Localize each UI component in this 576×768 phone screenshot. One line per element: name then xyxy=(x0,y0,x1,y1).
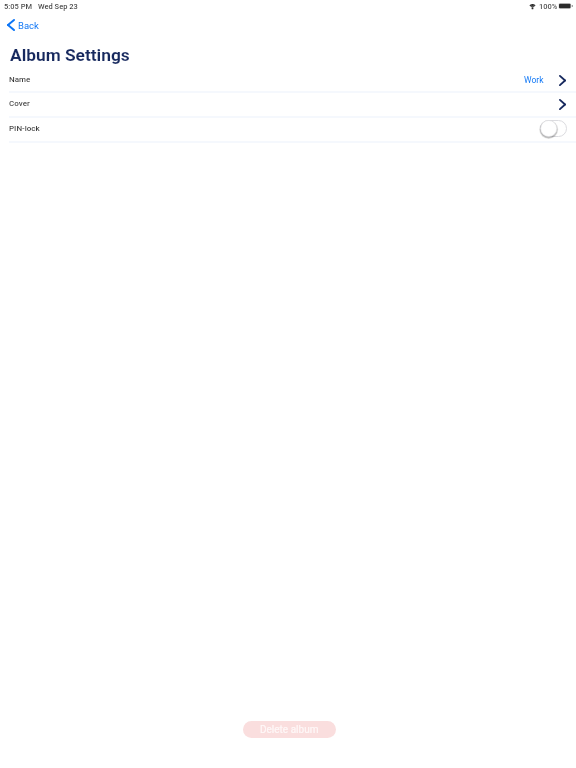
staticText: Back xyxy=(18,20,39,31)
staticText: PIN-lock xyxy=(9,124,40,133)
staticText: Cover xyxy=(9,99,30,108)
button[interactable]: Name xyxy=(0,67,576,92)
button[interactable]: Delete album xyxy=(243,721,336,738)
button[interactable]: Back xyxy=(0,14,45,36)
staticText: 100% xyxy=(539,2,558,11)
staticText: Work xyxy=(524,75,544,85)
staticText: 5:05 PM xyxy=(4,2,33,11)
staticText: Name xyxy=(9,75,31,84)
button[interactable]: Cover xyxy=(0,91,576,116)
staticText: Album Settings xyxy=(10,45,130,65)
button[interactable]: PIN-lock toggle xyxy=(540,120,567,137)
staticText: Wed Sep 23 xyxy=(38,2,78,11)
staticText: Delete album xyxy=(260,724,319,736)
button[interactable]: PIN-lock xyxy=(0,116,576,141)
